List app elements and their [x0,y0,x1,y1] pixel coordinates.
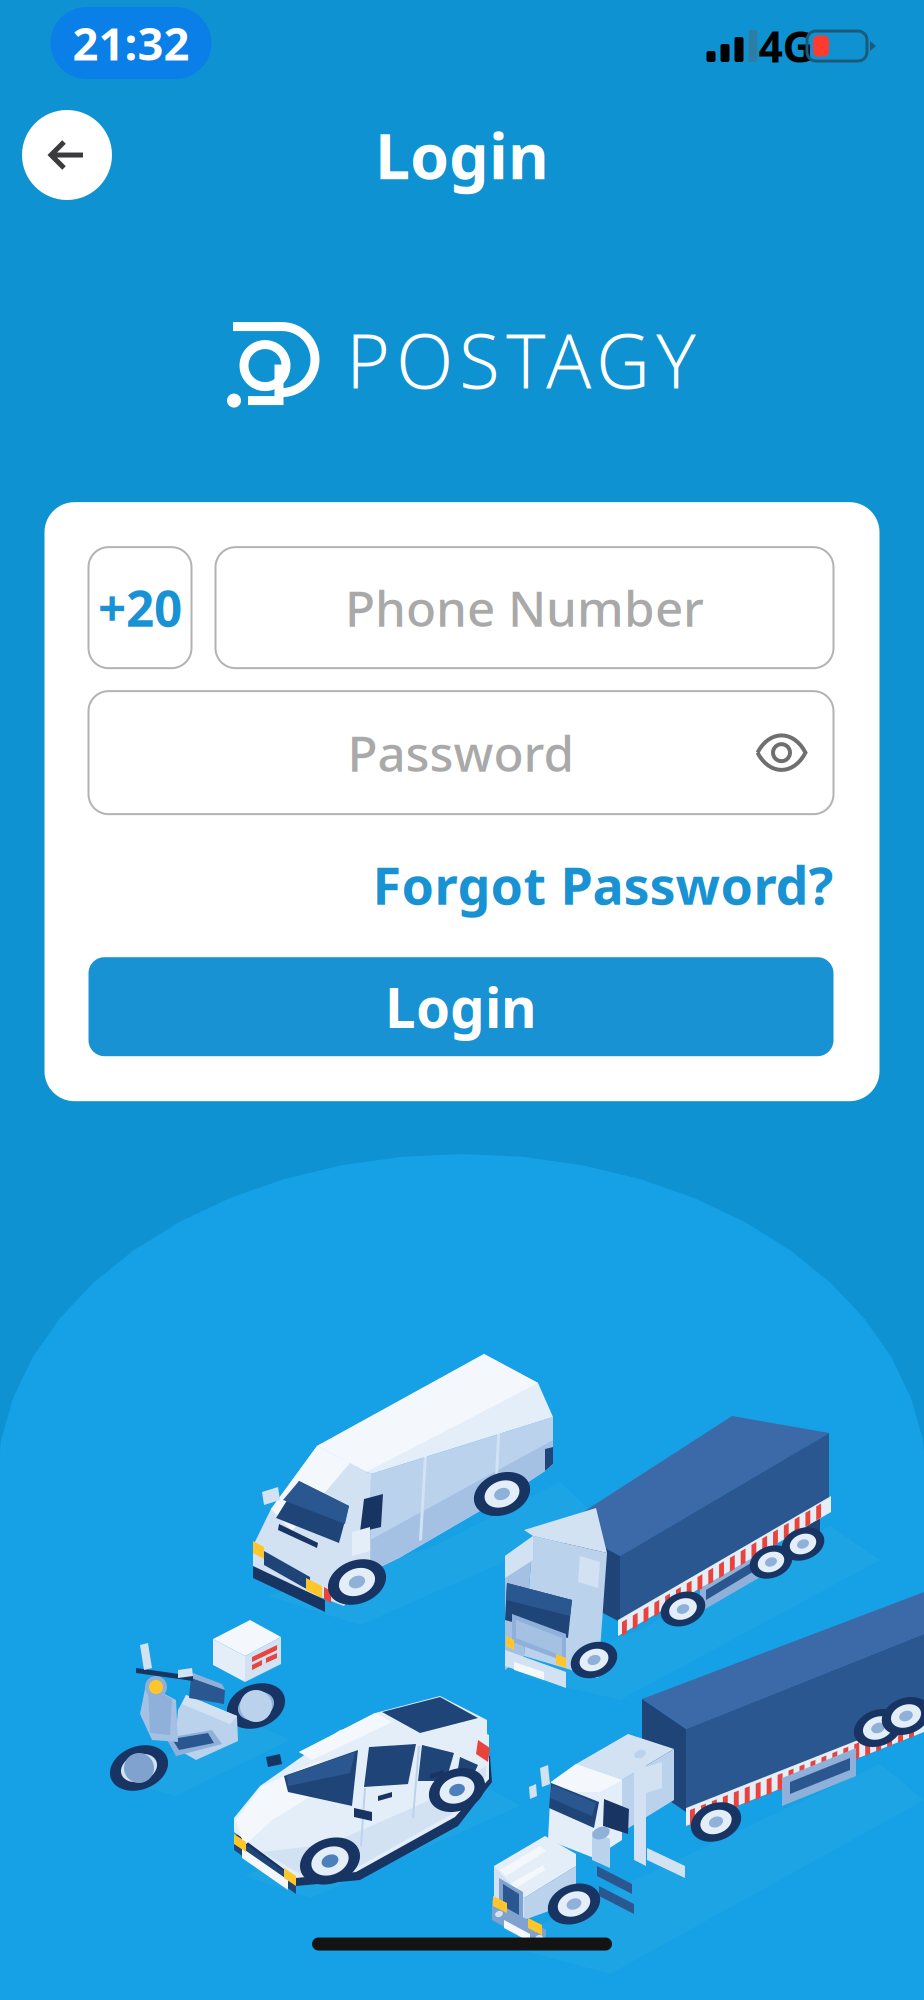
staticText: POSTAGY [346,310,696,409]
staticText: Phone Number [345,575,704,640]
button[interactable]: Show password [755,736,833,770]
staticText: 21:32 [72,13,189,73]
staticText: Login [375,113,549,197]
button[interactable]: Forgot Password? [88,850,833,919]
staticText: Forgot Password? [372,850,833,919]
button[interactable]: Back [22,110,112,200]
staticText: 4G [758,18,813,74]
staticText: Password [347,720,574,785]
staticText: +20 [98,575,182,640]
staticText: Login [385,970,537,1043]
button[interactable]: +20 [88,547,191,668]
button[interactable]: Login [88,957,833,1056]
